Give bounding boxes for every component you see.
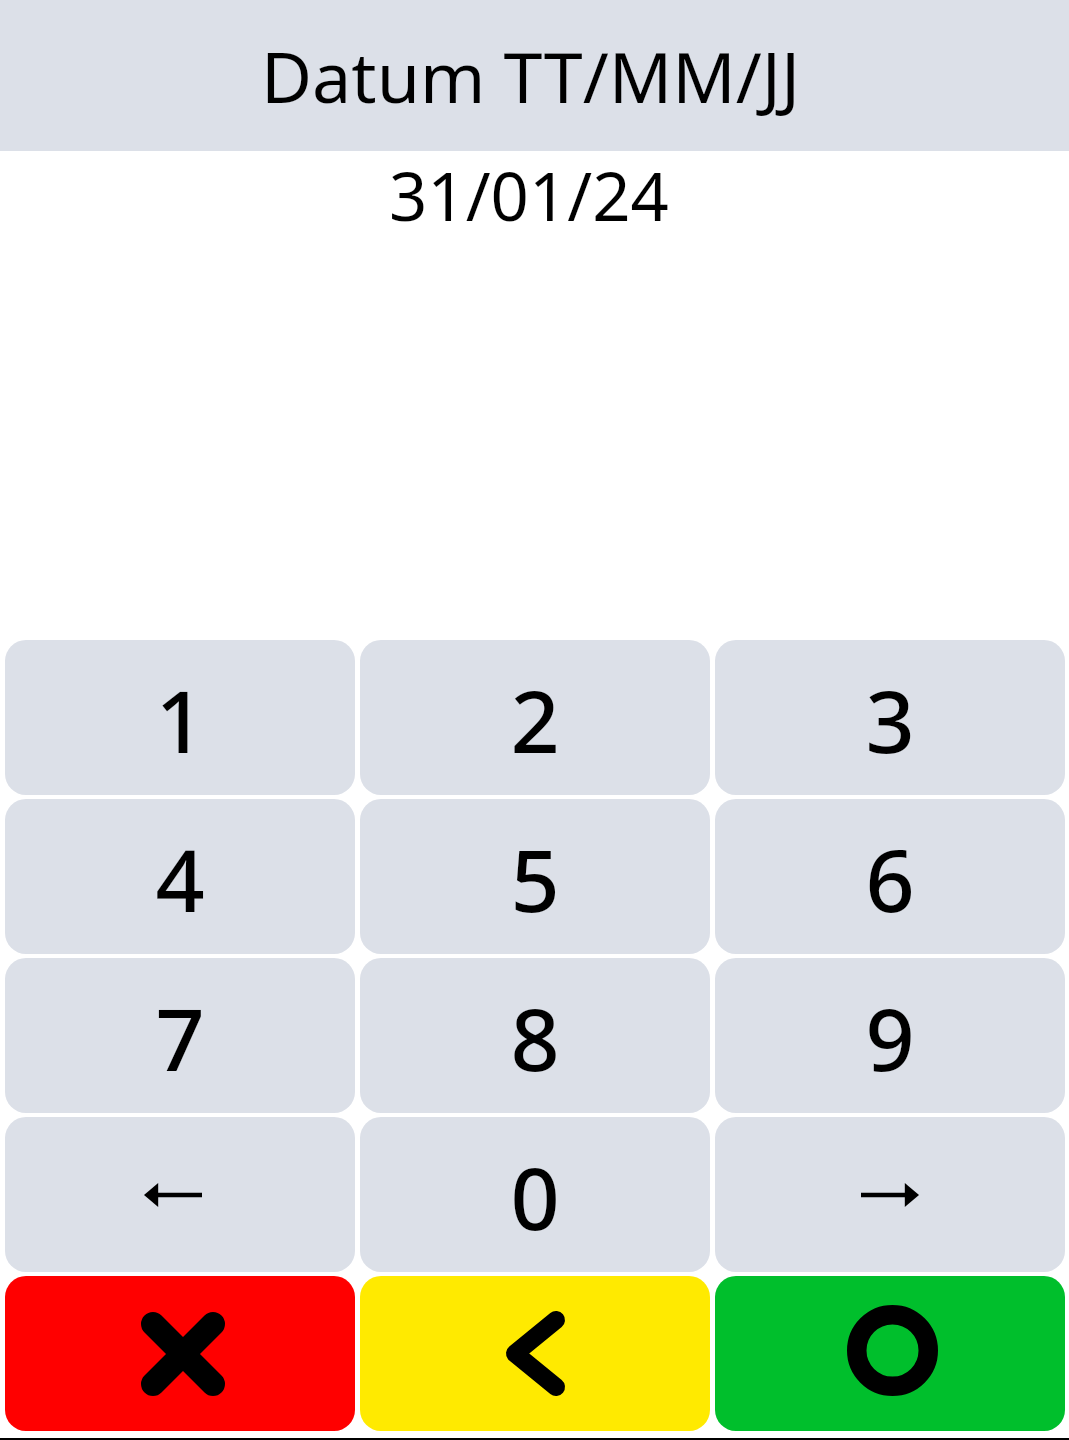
button[interactable]: Backspace <box>360 1276 710 1431</box>
button[interactable]: Confirm <box>715 1276 1065 1431</box>
staticText: 9 <box>865 979 915 1096</box>
staticText: 2 <box>510 661 560 778</box>
button[interactable]: 5 <box>360 799 710 954</box>
button[interactable]: 8 <box>360 958 710 1113</box>
staticText: 6 <box>865 820 915 937</box>
button[interactable]: 9 <box>715 958 1065 1113</box>
button[interactable]: 7 <box>5 958 355 1113</box>
staticText: 8 <box>510 979 560 1096</box>
staticText: 31/01/24 <box>389 149 669 235</box>
staticText: 0 <box>510 1138 560 1255</box>
staticText: 5 <box>510 820 560 937</box>
staticText: Datum TT/MM/JJ <box>261 28 801 123</box>
button[interactable]: Move cursor left <box>5 1117 355 1272</box>
button[interactable]: 3 <box>715 640 1065 795</box>
staticText: 3 <box>865 661 915 778</box>
button[interactable]: 4 <box>5 799 355 954</box>
button[interactable]: 0 <box>360 1117 710 1272</box>
staticText: 1 <box>155 661 205 778</box>
button[interactable]: 1 <box>5 640 355 795</box>
button[interactable]: Move cursor right <box>715 1117 1065 1272</box>
staticText: 7 <box>155 979 205 1096</box>
staticText: 4 <box>155 820 205 937</box>
button[interactable]: Cancel <box>5 1276 355 1431</box>
button[interactable]: 2 <box>360 640 710 795</box>
button[interactable]: 6 <box>715 799 1065 954</box>
